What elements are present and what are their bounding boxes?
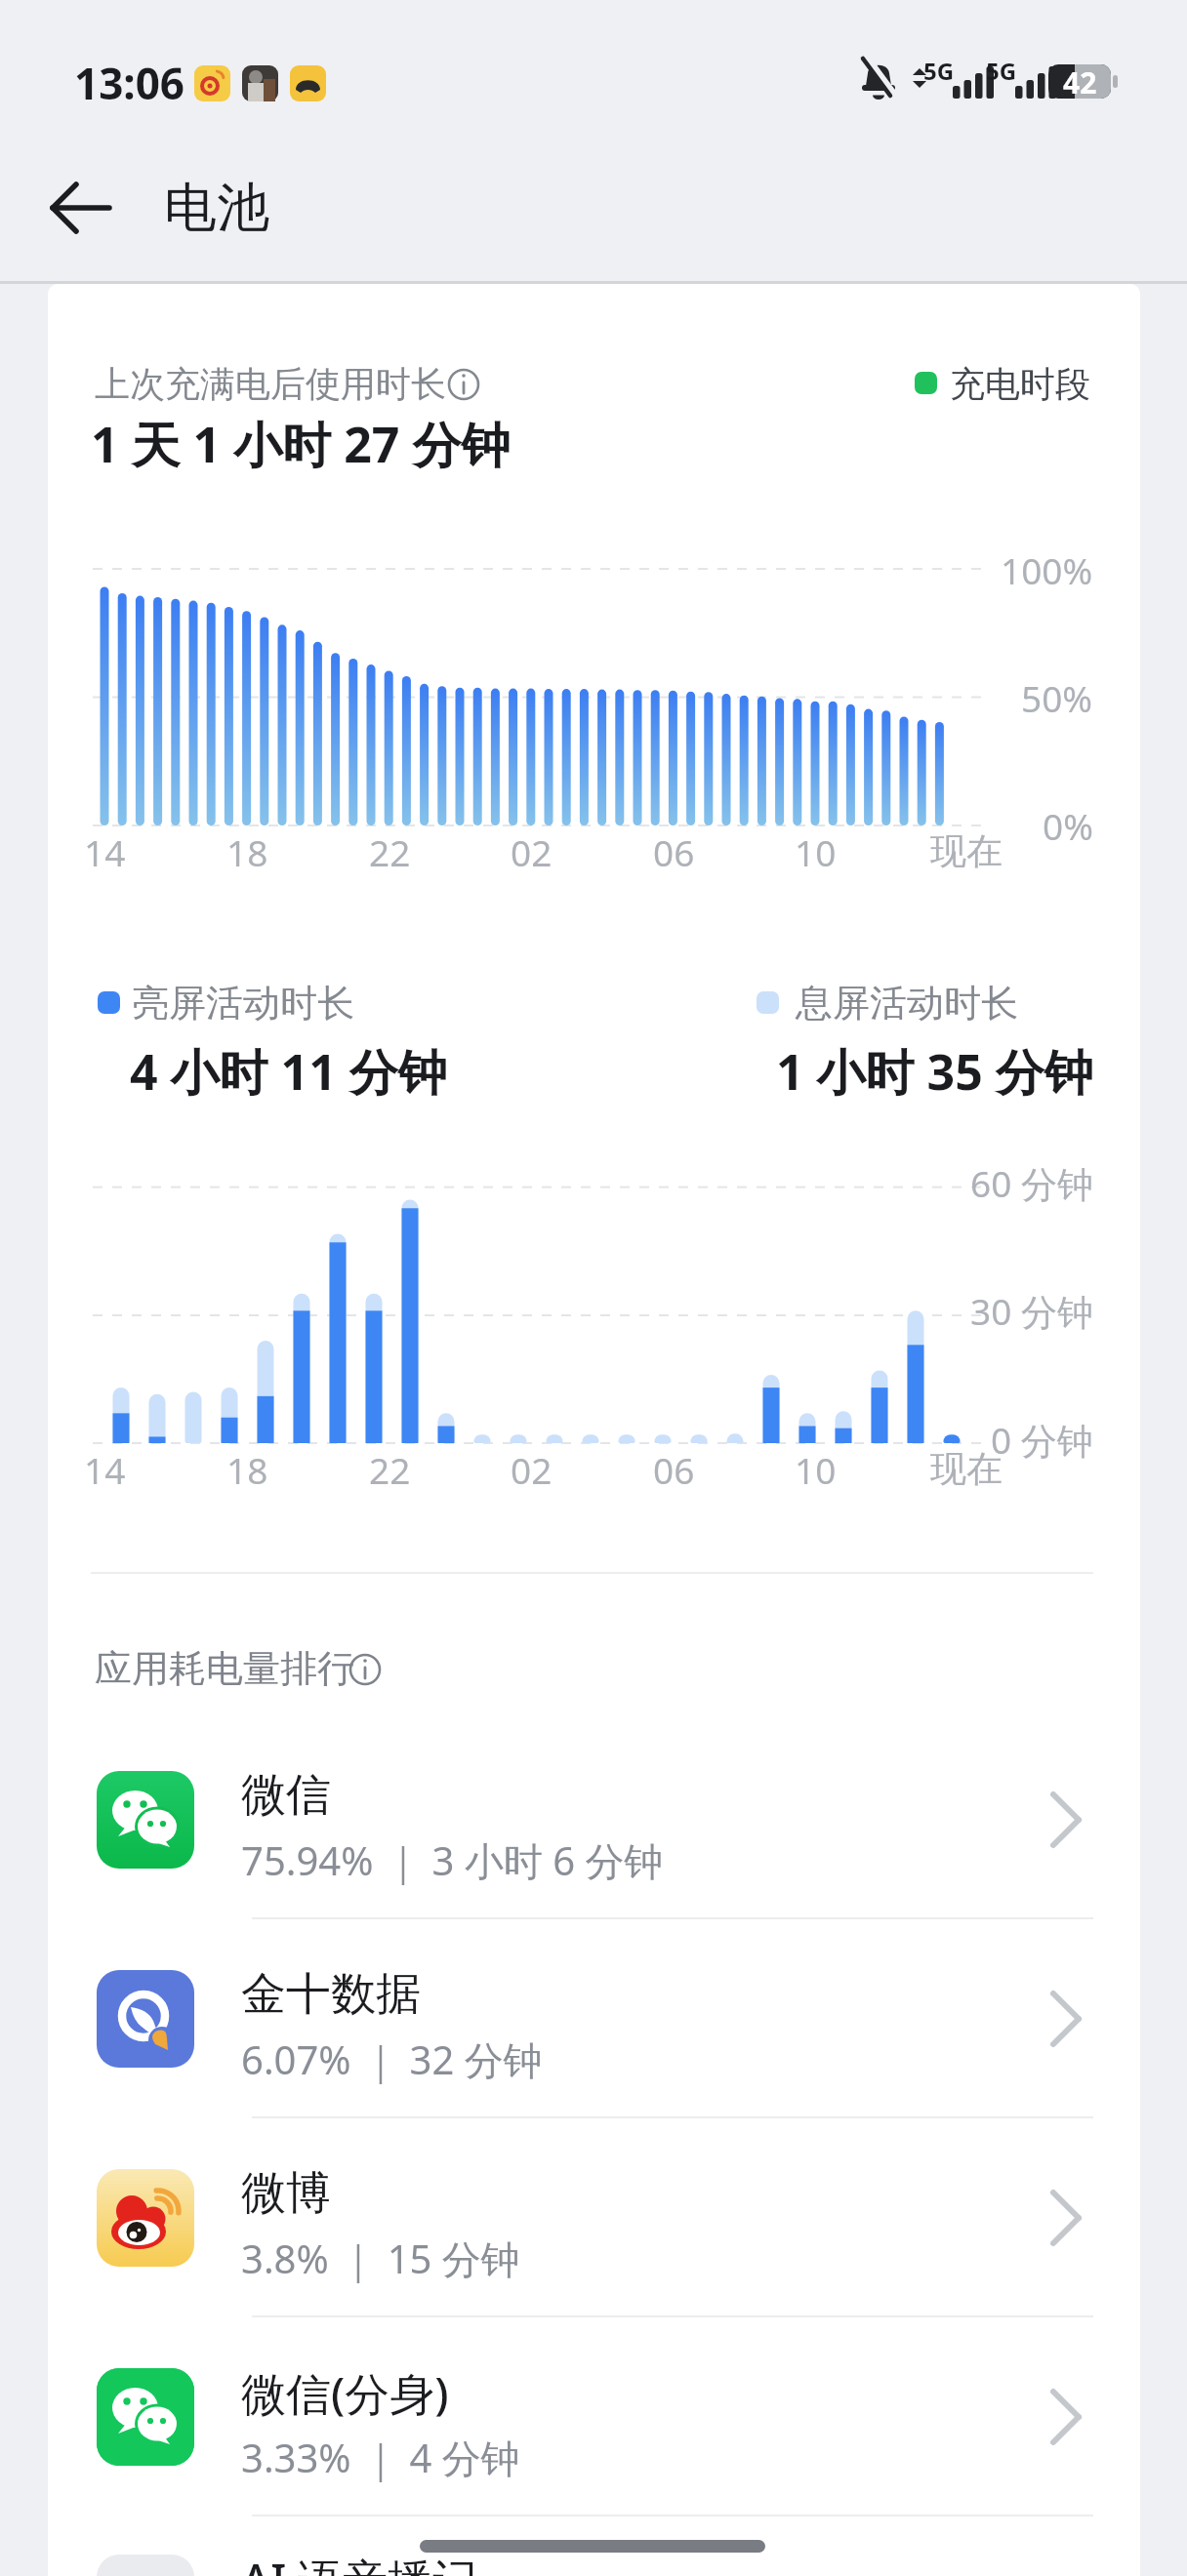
staticText: 5G: [923, 55, 955, 87]
staticText: 13:06: [74, 54, 185, 112]
staticText: 电池: [164, 175, 269, 241]
button[interactable]: 微信: [48, 1720, 1140, 1919]
staticText: 微信: [241, 1767, 331, 1824]
staticText: 金十数据: [241, 1966, 421, 2023]
staticText: 5G: [986, 55, 1017, 87]
staticText: 6.07% ｜ 32 分钟: [241, 2033, 543, 2086]
button[interactable]: 金十数据: [48, 1919, 1140, 2118]
staticText: 100%: [1001, 545, 1093, 594]
staticText: 1 天 1 小时 27 分钟: [91, 411, 511, 477]
staticText: 应用耗电量排行: [95, 1645, 354, 1692]
staticText: 微博: [241, 2165, 331, 2222]
staticText: 42: [1063, 62, 1097, 102]
staticText: 14: [84, 827, 126, 876]
staticText: 22: [369, 827, 411, 876]
staticText: 亮屏活动时长: [132, 980, 354, 1026]
staticText: 现在: [930, 828, 1003, 874]
button[interactable]: 微博: [48, 2118, 1140, 2317]
staticText: 0%: [1043, 801, 1093, 850]
button[interactable]: [39, 176, 127, 244]
staticText: 3.8% ｜ 15 分钟: [241, 2232, 520, 2285]
staticText: 14: [84, 1445, 126, 1494]
staticText: 1 小时 35 分钟: [776, 1038, 1093, 1105]
staticText: 上次充满电后使用时长: [95, 362, 446, 406]
staticText: 30 分钟: [970, 1286, 1093, 1336]
button[interactable]: [348, 1653, 382, 1686]
staticText: 75.94% ｜ 3 小时 6 分钟: [241, 1833, 664, 1887]
staticText: 60 分钟: [970, 1158, 1093, 1208]
staticText: 50%: [1021, 673, 1093, 722]
staticText: 0 分钟: [991, 1415, 1093, 1465]
staticText: 3.33% ｜ 4 分钟: [241, 2431, 520, 2484]
staticText: 充电时段: [950, 362, 1090, 406]
button[interactable]: AI 语音播记: [48, 2504, 1140, 2576]
staticText: 10: [795, 827, 837, 876]
staticText: 息屏活动时长: [796, 980, 1018, 1026]
staticText: 06: [653, 827, 695, 876]
staticText: 4 小时 11 分钟: [130, 1038, 447, 1105]
staticText: 18: [226, 1445, 268, 1494]
staticText: 06: [653, 1445, 695, 1494]
staticText: 微信(分身): [241, 2362, 449, 2424]
button[interactable]: [447, 368, 480, 401]
staticText: 10: [795, 1445, 837, 1494]
staticText: 现在: [930, 1446, 1003, 1492]
staticText: AI 语音播记: [241, 2549, 478, 2576]
button[interactable]: 微信(分身): [48, 2317, 1140, 2516]
staticText: 02: [511, 827, 553, 876]
staticText: 02: [511, 1445, 553, 1494]
staticText: 22: [369, 1445, 411, 1494]
staticText: 18: [226, 827, 268, 876]
